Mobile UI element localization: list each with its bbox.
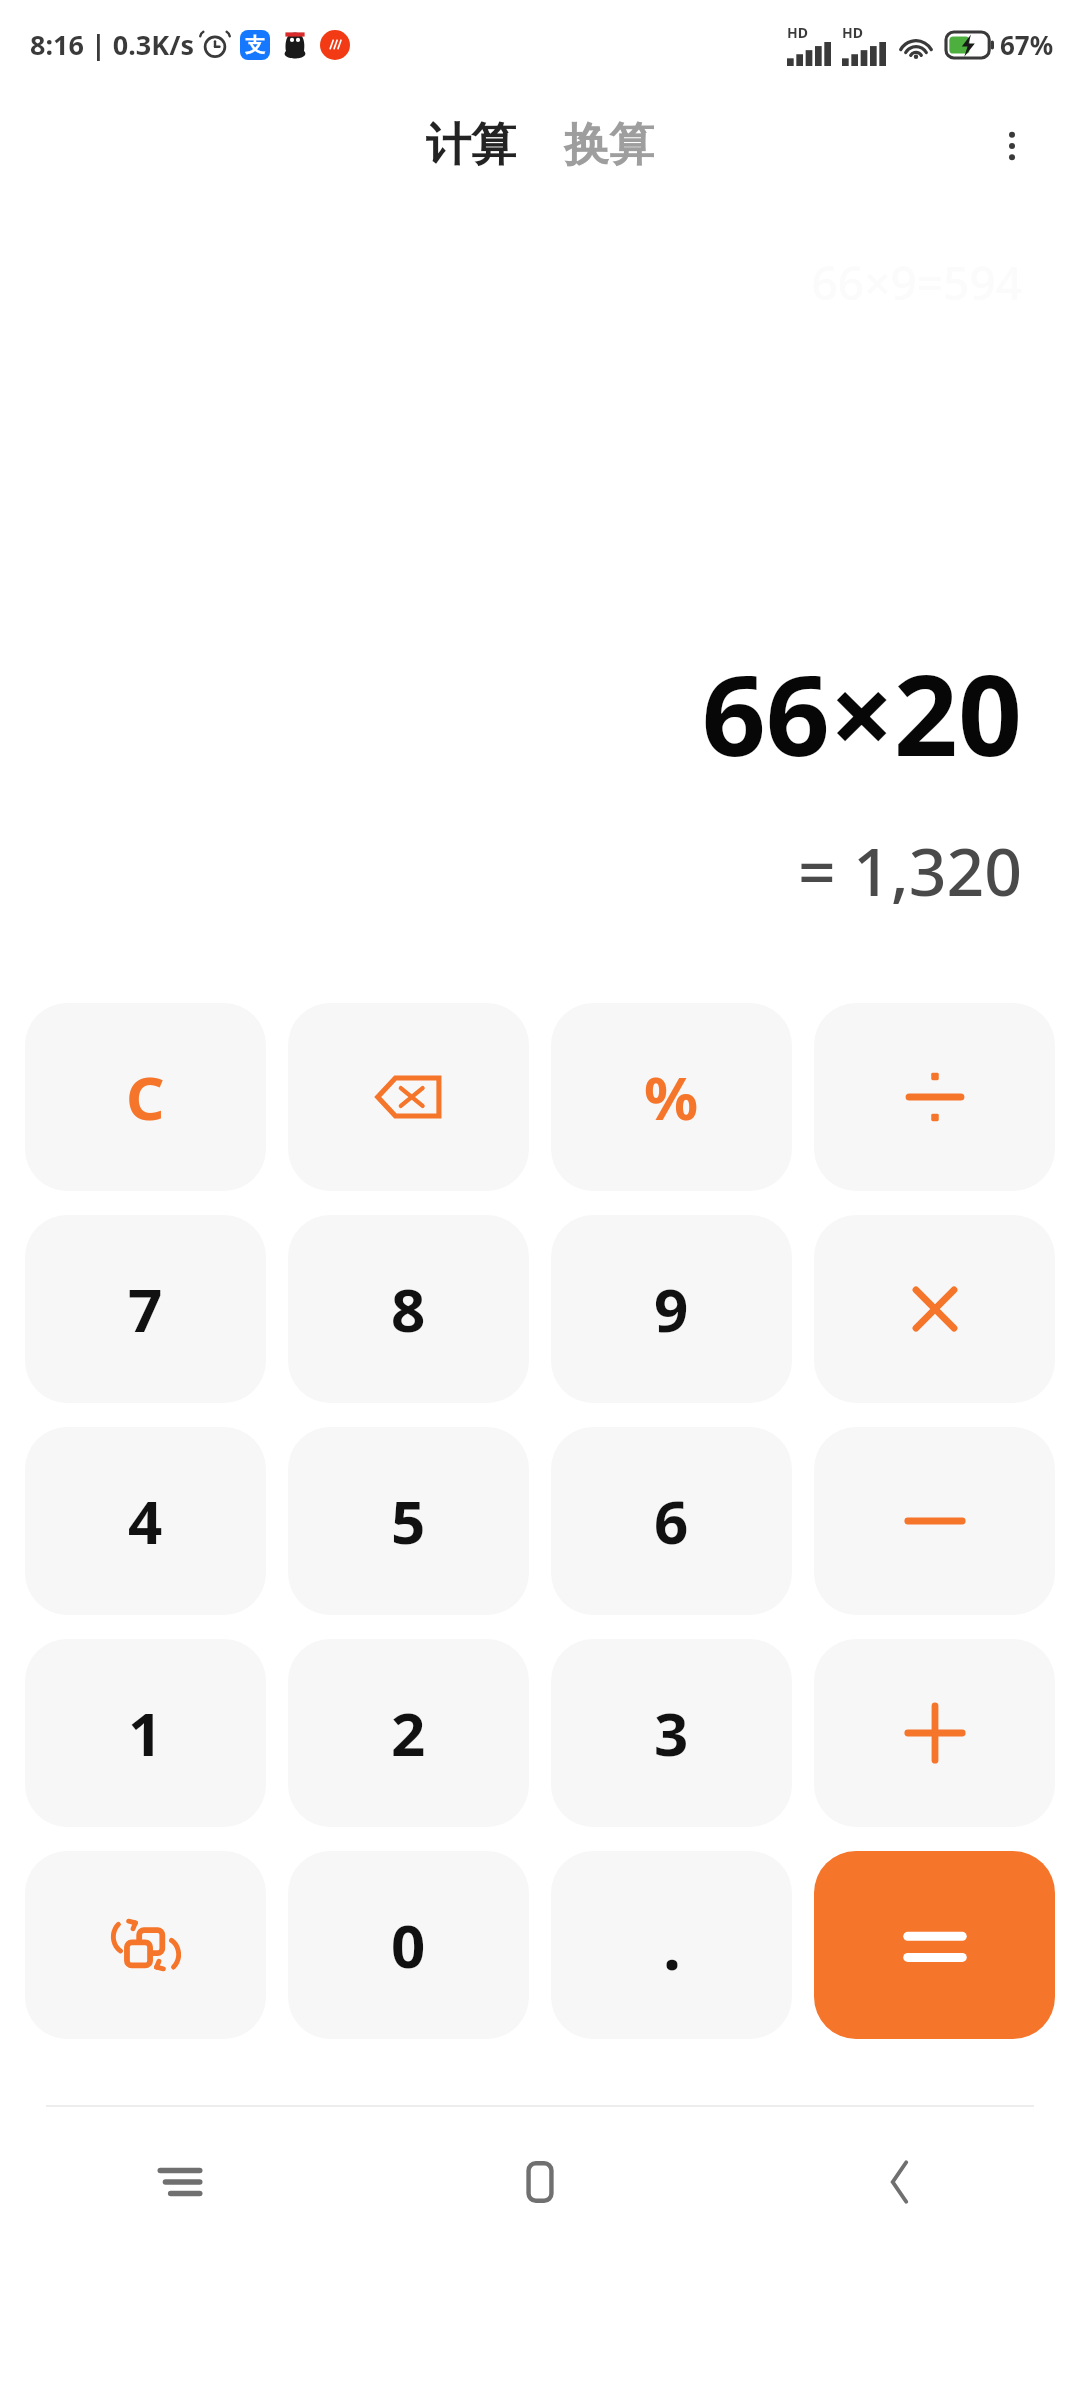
staticText: 6 [654,1480,689,1562]
button[interactable]: 5 [288,1427,529,1615]
staticText: 支 [245,33,265,58]
button[interactable]: 换算 [554,111,664,180]
staticText: HD [787,23,808,42]
button[interactable]: Multiply [814,1215,1055,1403]
button[interactable]: 计算 [416,111,526,180]
staticText: 0 [391,1904,426,1986]
staticText: 67% [1000,27,1054,62]
button[interactable]: Convert [25,1851,266,2039]
staticText: 8:16 | 0.3K/s [30,26,194,63]
button[interactable]: Recents [0,2107,360,2257]
staticText: 5 [391,1480,426,1562]
button[interactable]: More options [972,106,1052,186]
button[interactable]: C [25,1003,266,1191]
staticText: 1 [128,1692,163,1774]
button[interactable]: 0 [288,1851,529,2039]
staticText: C [126,1056,165,1138]
staticText: 8 [391,1268,426,1350]
staticText: 4 [128,1480,163,1562]
button[interactable]: 9 [551,1215,792,1403]
button[interactable]: Equals [814,1851,1055,2039]
staticText: 9 [654,1268,689,1350]
staticText: 66×20 [701,636,1022,789]
button[interactable]: 4 [25,1427,266,1615]
button[interactable]: Home [360,2107,720,2257]
button[interactable]: 6 [551,1427,792,1615]
staticText: 7 [128,1268,163,1350]
staticText: % [644,1056,699,1138]
button[interactable]: Back [720,2107,1080,2257]
button[interactable]: % [551,1003,792,1191]
button[interactable]: 2 [288,1639,529,1827]
staticText: 2 [391,1692,426,1774]
staticText: 换算 [564,117,654,174]
button[interactable]: 7 [25,1215,266,1403]
button[interactable]: Delete [288,1003,529,1191]
button[interactable]: 8 [288,1215,529,1403]
staticText: 3 [654,1692,689,1774]
staticText: HD [842,23,863,42]
button[interactable]: Plus [814,1639,1055,1827]
staticText: = 1,320 [798,825,1022,915]
button[interactable]: 3 [551,1639,792,1827]
button[interactable]: . [551,1851,792,2039]
button[interactable]: Minus [814,1427,1055,1615]
staticText: 计算 [426,117,516,174]
staticText: . [663,1902,681,1989]
button[interactable]: Divide [814,1003,1055,1191]
button[interactable]: 1 [25,1639,266,1827]
